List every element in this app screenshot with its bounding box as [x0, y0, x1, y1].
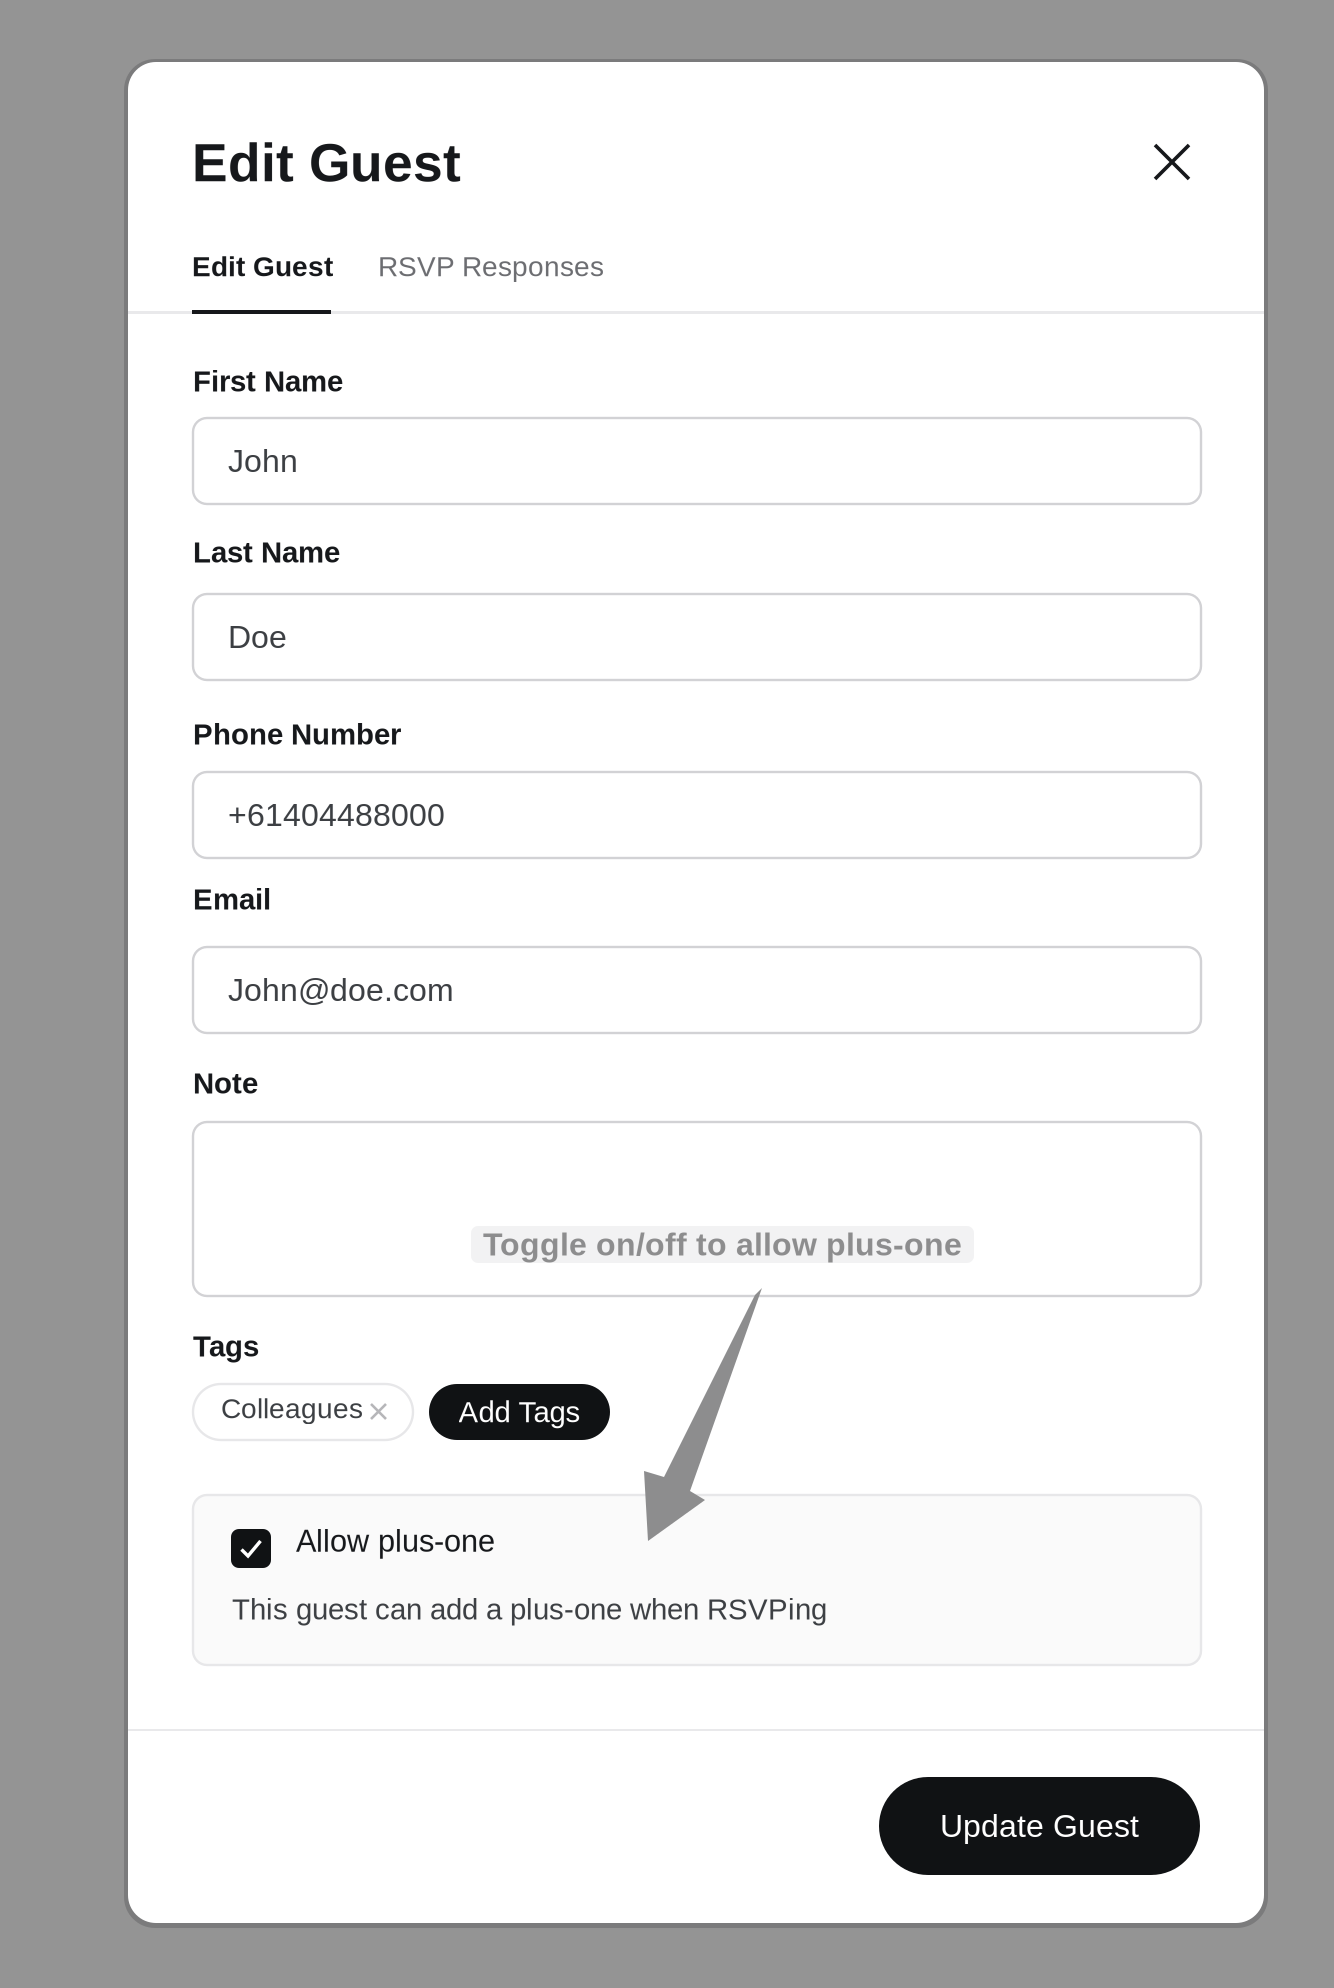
staticText: Edit Guest: [192, 251, 333, 282]
staticText: Colleagues: [221, 1393, 363, 1424]
staticText: Tags: [193, 1330, 259, 1363]
staticText: +61404488000: [228, 797, 445, 833]
staticText: Last Name: [193, 536, 340, 569]
staticText: John: [228, 443, 298, 479]
staticText: Note: [193, 1067, 258, 1100]
button[interactable]: Allow plus-one: [193, 1495, 1201, 1665]
staticText: Allow plus-one: [296, 1524, 495, 1558]
staticText: Add Tags: [458, 1396, 580, 1428]
staticText: Doe: [228, 619, 287, 655]
staticText: Email: [193, 883, 271, 916]
button[interactable]: RSVP Responses: [378, 251, 678, 323]
staticText: Edit Guest: [192, 133, 461, 193]
button[interactable]: Phone Number: [193, 772, 1201, 858]
button[interactable]: Close: [1139, 129, 1205, 195]
staticText: Phone Number: [193, 718, 401, 751]
button[interactable]: Colleagues: [193, 1384, 413, 1440]
staticText: Toggle on/off to allow plus-one: [483, 1227, 962, 1262]
staticText: John@doe.com: [228, 972, 454, 1008]
staticText: This guest can add a plus-one when RSVPi…: [232, 1593, 827, 1626]
button[interactable]: Last Name: [193, 594, 1201, 680]
button[interactable]: Note: [193, 1122, 1201, 1296]
staticText: First Name: [193, 365, 343, 398]
button[interactable]: Email: [193, 947, 1201, 1033]
staticText: Update Guest: [940, 1808, 1139, 1844]
button[interactable]: First Name: [193, 418, 1201, 504]
staticText: RSVP Responses: [378, 251, 604, 282]
button[interactable]: Edit Guest: [192, 251, 378, 323]
button[interactable]: Add Tags: [429, 1384, 610, 1440]
button[interactable]: Update Guest: [879, 1777, 1200, 1875]
